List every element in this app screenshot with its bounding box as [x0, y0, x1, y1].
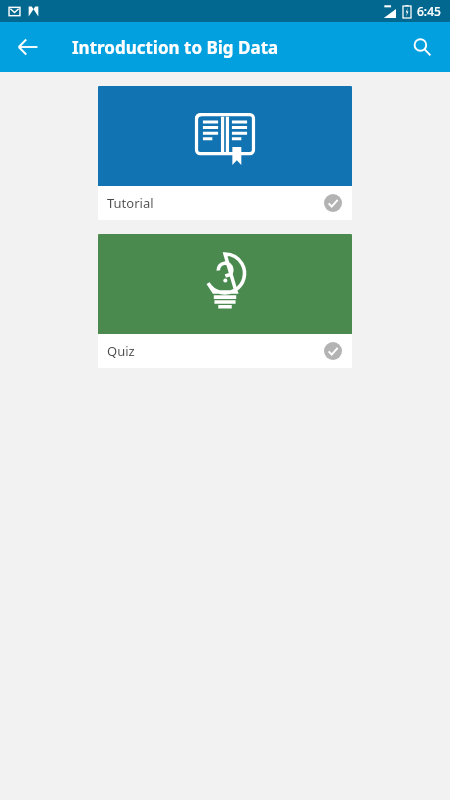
staticText: 6:45	[417, 3, 441, 19]
staticText: Tutorial	[107, 194, 154, 212]
button[interactable]: Back	[6, 25, 50, 69]
button[interactable]: Quiz	[98, 234, 352, 368]
staticText: Quiz	[107, 342, 135, 360]
staticText: Introduction to Big Data	[72, 36, 279, 59]
button[interactable]: Search	[400, 25, 444, 69]
button[interactable]: Tutorial	[98, 86, 352, 220]
